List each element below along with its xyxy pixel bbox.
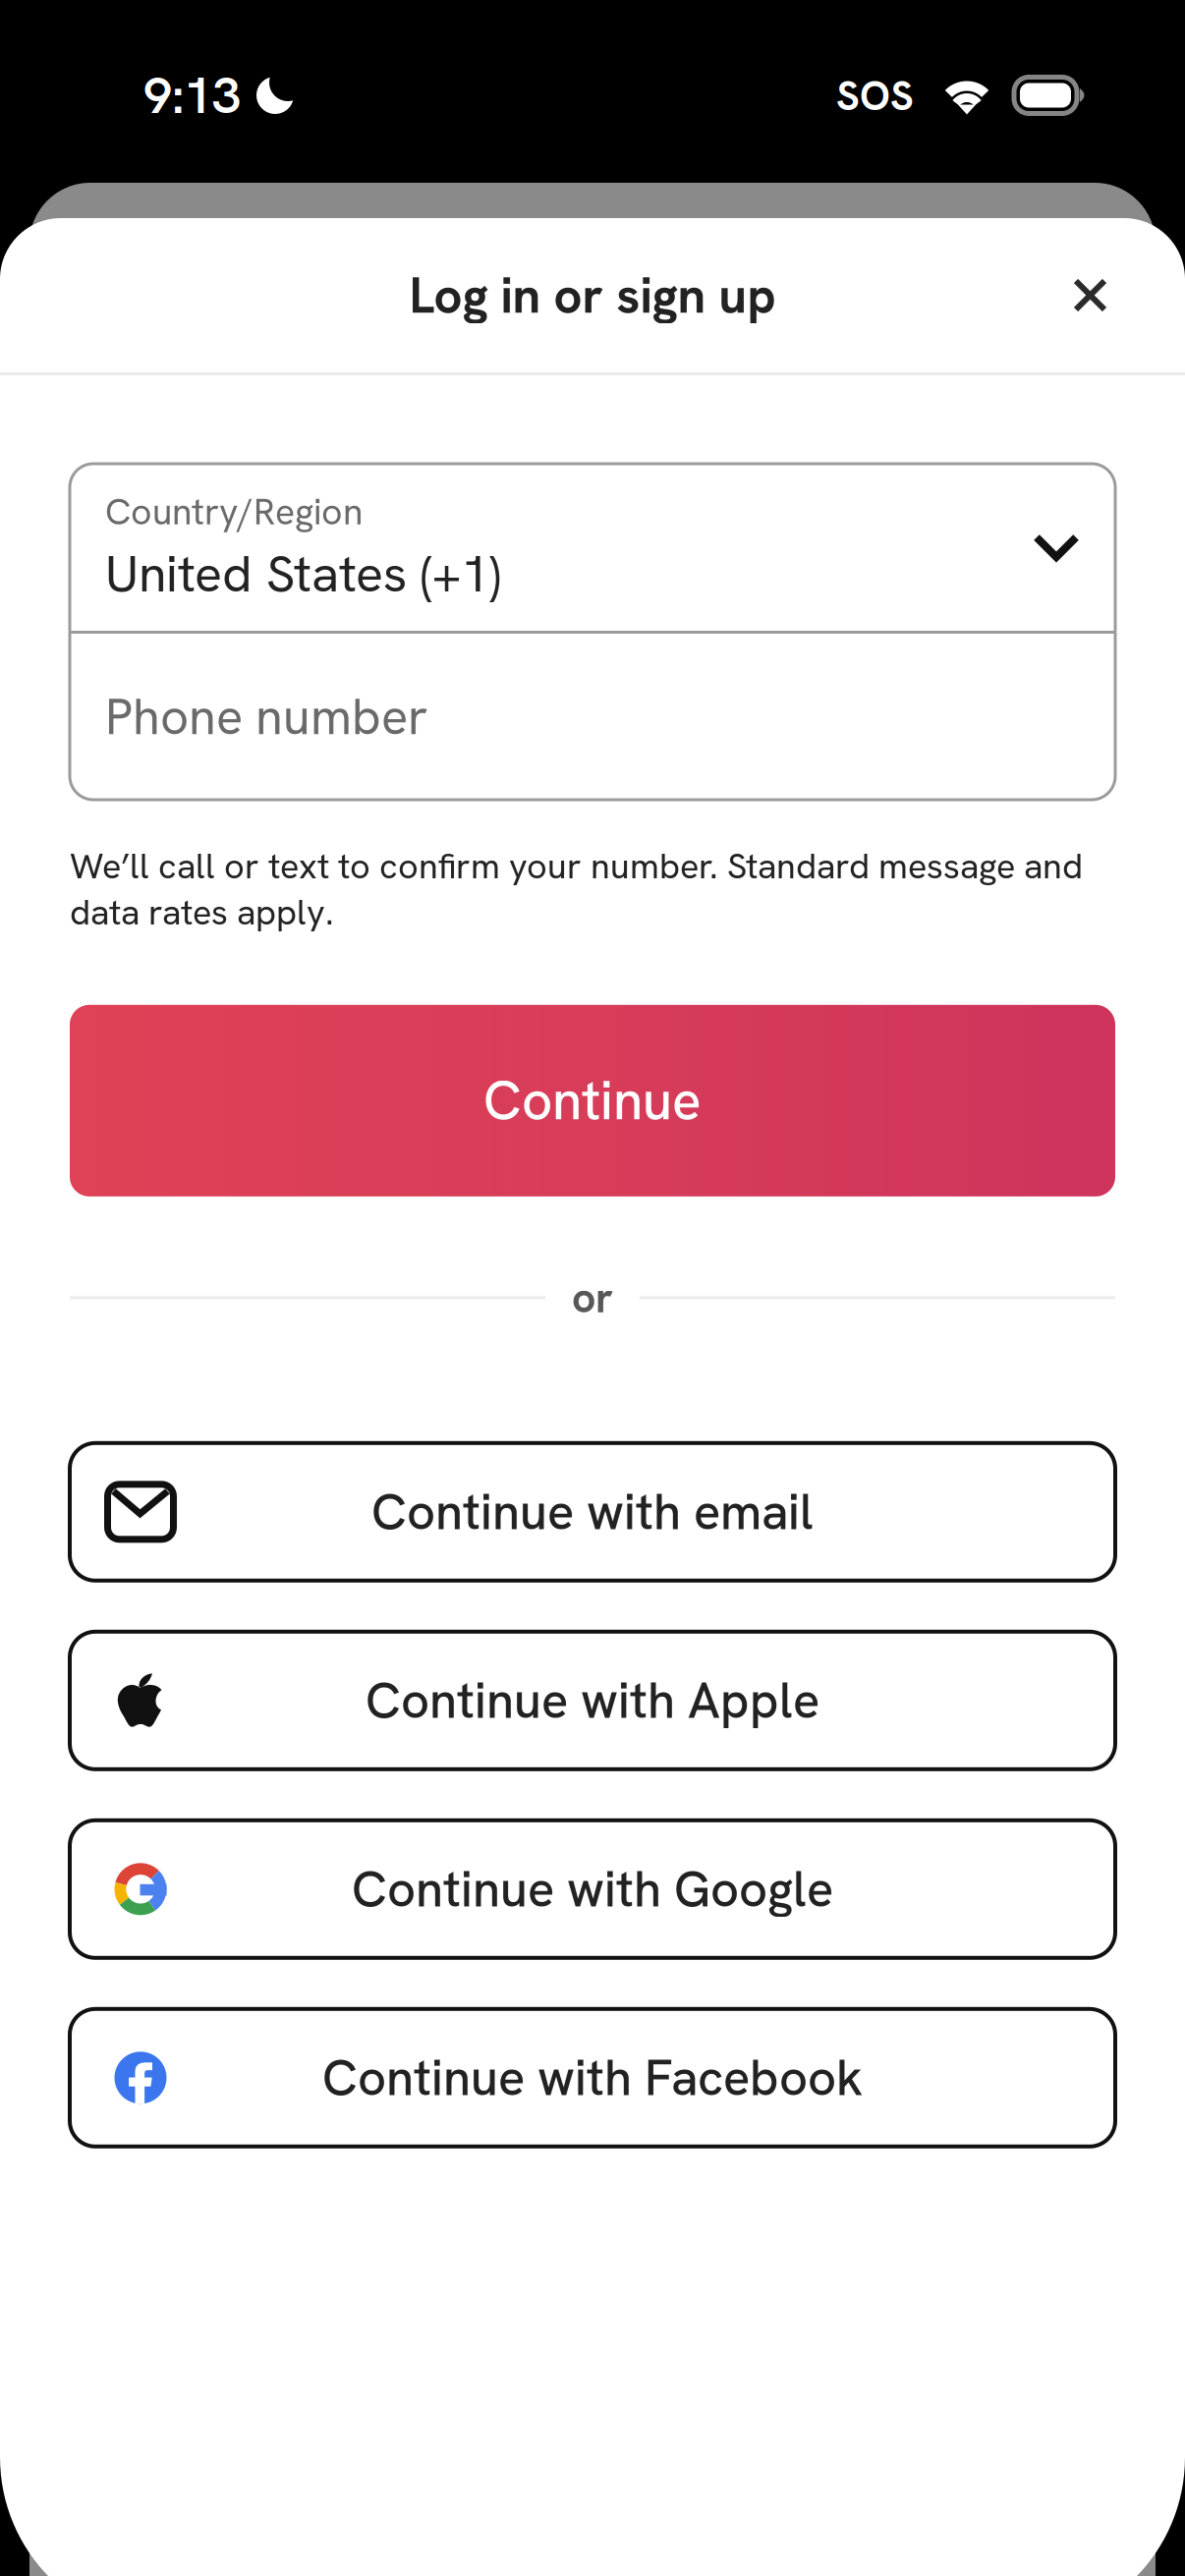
staticText: Continue — [483, 1066, 702, 1136]
button[interactable]: Continue with email — [70, 1443, 1115, 1581]
staticText: Continue with Facebook — [322, 2045, 863, 2110]
button[interactable]: Continue with Google — [70, 1820, 1115, 1958]
button[interactable]: Continue with Apple — [70, 1632, 1115, 1769]
button[interactable]: Close — [1047, 252, 1133, 338]
button[interactable]: Continue with Facebook — [70, 2009, 1115, 2146]
staticText: Continue with Apple — [366, 1668, 819, 1733]
staticText: Continue with Google — [352, 1857, 833, 1921]
staticText: We’ll call or text to confirm your numbe… — [70, 843, 1083, 935]
staticText: United States (+1) — [105, 540, 501, 607]
staticText: Continue with email — [371, 1479, 814, 1544]
staticText: SOS — [836, 69, 914, 122]
button[interactable]: Continue — [70, 1005, 1115, 1196]
staticText: 9:13 — [143, 62, 241, 129]
staticText: or — [572, 1270, 613, 1325]
staticText: Country/Region — [105, 488, 363, 535]
staticText: Phone number — [105, 684, 428, 749]
staticText: Log in or sign up — [409, 263, 776, 328]
